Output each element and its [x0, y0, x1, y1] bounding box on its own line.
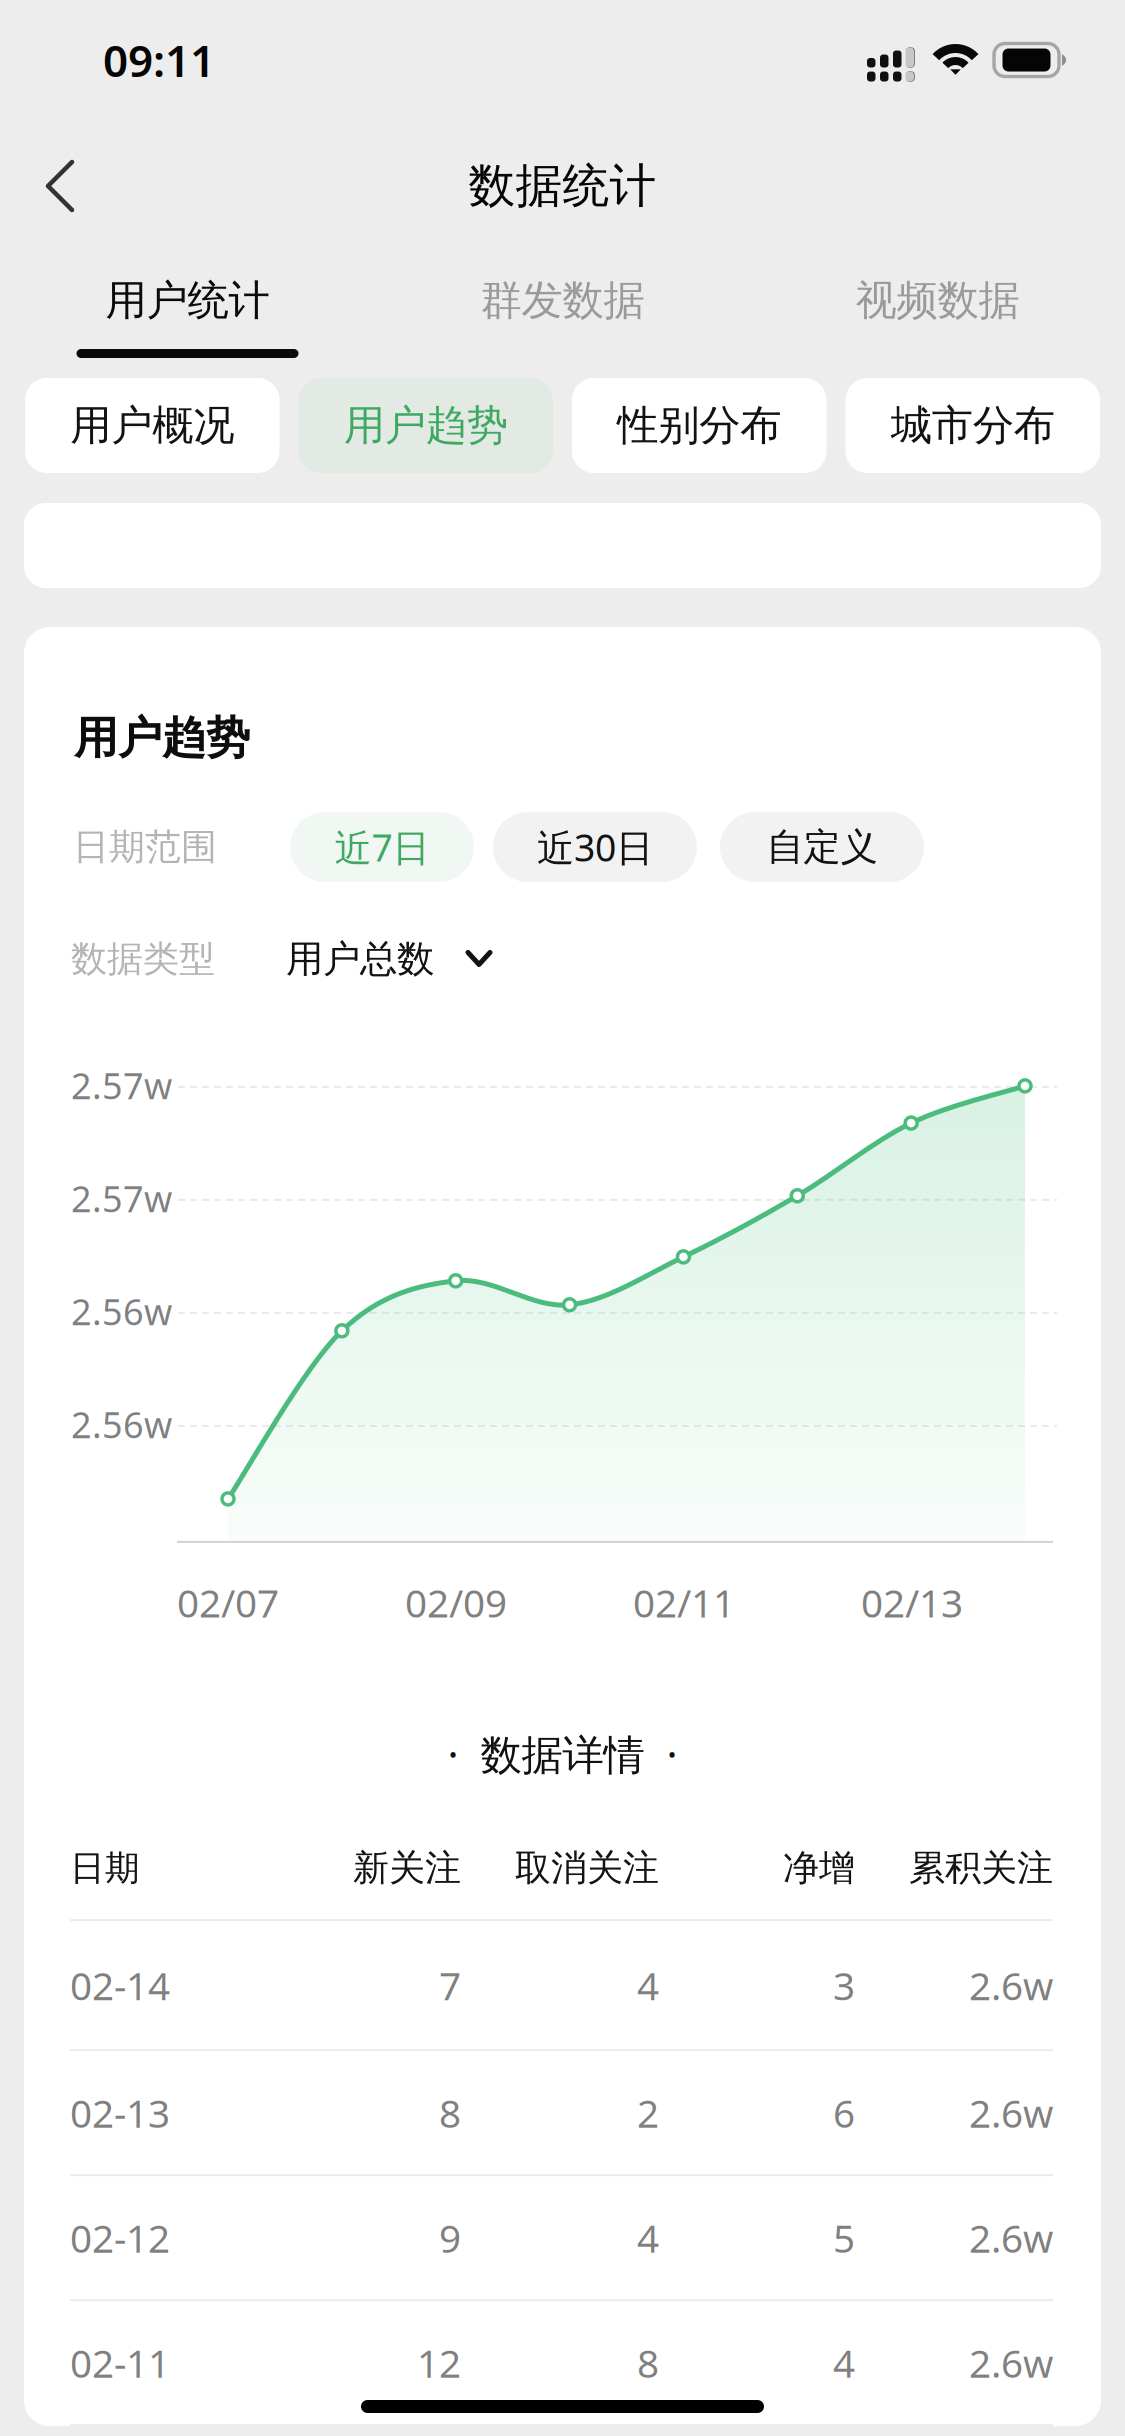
button[interactable]: 城市分布: [845, 378, 1100, 473]
button[interactable]: Back: [0, 120, 107, 252]
staticText: 用户总数: [286, 936, 434, 982]
button[interactable]: 群发数据: [375, 252, 750, 378]
staticText: 日期范围: [73, 825, 217, 869]
staticText: 用户统计: [105, 275, 269, 326]
button[interactable]: 性别分布: [572, 378, 826, 473]
staticText: 4: [833, 2337, 855, 2388]
staticText: 数据统计: [468, 157, 656, 215]
staticText: 5: [833, 2212, 855, 2263]
staticText: 4: [637, 2212, 659, 2263]
staticText: 2.56w: [71, 1400, 172, 1448]
button[interactable]: 用户概况: [25, 378, 279, 473]
staticText: 02-13: [70, 2087, 170, 2138]
staticText: 02-12: [70, 2212, 170, 2263]
staticText: 日期: [70, 1847, 140, 1889]
button[interactable]: 近30日: [493, 812, 697, 882]
button[interactable]: 近7日: [290, 812, 474, 882]
staticText: 8: [439, 2087, 461, 2138]
staticText: · 数据详情 ·: [447, 1726, 677, 1781]
staticText: 2: [637, 2087, 659, 2138]
staticText: 2.6w: [969, 1959, 1053, 2011]
staticText: 4: [637, 1959, 659, 2011]
staticText: 02/09: [405, 1577, 507, 1628]
button[interactable]: 用户总数: [286, 936, 491, 982]
staticText: 群发数据: [480, 275, 644, 326]
staticText: 用户概况: [70, 400, 234, 451]
staticText: 7: [439, 1959, 461, 2011]
staticText: 9: [439, 2212, 461, 2263]
staticText: 12: [417, 2337, 461, 2388]
staticText: 新关注: [353, 1846, 461, 1890]
staticText: 累积关注: [909, 1846, 1053, 1890]
staticText: 2.6w: [969, 2087, 1053, 2138]
staticText: 2.6w: [969, 2212, 1053, 2263]
button[interactable]: 视频数据: [750, 252, 1125, 378]
staticText: 用户趋势: [74, 711, 250, 765]
staticText: 用户趋势: [344, 400, 508, 451]
staticText: 近30日: [537, 822, 653, 872]
staticText: 2.57w: [71, 1174, 172, 1222]
staticText: 02/13: [861, 1577, 963, 1628]
staticText: 09:11: [103, 31, 215, 89]
staticText: 6: [833, 2087, 855, 2138]
staticText: 取消关注: [515, 1846, 659, 1890]
button[interactable]: 用户趋势: [298, 378, 553, 473]
staticText: 净增: [783, 1846, 855, 1890]
staticText: 自定义: [766, 824, 877, 870]
staticText: 02/07: [177, 1577, 279, 1628]
staticText: 02/11: [633, 1577, 735, 1628]
staticText: 2.57w: [71, 1061, 172, 1109]
staticText: 数据类型: [71, 937, 215, 981]
staticText: 近7日: [334, 822, 429, 872]
staticText: 视频数据: [855, 275, 1019, 326]
staticText: 城市分布: [891, 400, 1055, 451]
staticText: 2.56w: [71, 1287, 172, 1335]
staticText: 性别分布: [617, 400, 781, 451]
staticText: 2.6w: [969, 2337, 1053, 2388]
staticText: 02-14: [70, 1959, 170, 2011]
button[interactable]: 用户统计: [0, 252, 375, 378]
button[interactable]: 自定义: [720, 812, 924, 882]
staticText: 3: [833, 1959, 855, 2011]
staticText: 8: [637, 2337, 659, 2388]
staticText: 02-11: [70, 2337, 170, 2388]
